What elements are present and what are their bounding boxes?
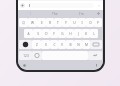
staticText: The [52,12,58,16]
staticText: R [49,21,51,25]
staticText: V [61,43,63,47]
button[interactable]: Q [19,18,28,27]
button[interactable]: D [42,29,50,38]
button[interactable]: 123 [19,51,32,60]
button[interactable]: Voice input [96,3,101,8]
button[interactable]: I [78,18,86,27]
button[interactable]: R [46,18,54,27]
staticText: I [30,12,32,16]
staticText: 123 [23,54,29,58]
button[interactable]: W [28,18,37,27]
staticText: M [85,43,88,47]
button[interactable] [27,3,94,8]
staticText: P [97,21,99,25]
button[interactable]: X [41,40,50,49]
staticText: A [27,32,30,36]
button[interactable]: O [86,18,94,27]
staticText: H [69,32,72,36]
button[interactable]: H [66,29,74,38]
staticText: J [78,32,79,36]
staticText: C [53,43,56,47]
staticText: D [45,32,48,36]
button[interactable]: The [41,10,68,17]
button[interactable]: Keyboard settings [95,10,101,17]
button[interactable]: Change language [22,63,27,68]
staticText: N [77,43,80,47]
button[interactable]: F [50,29,58,38]
button[interactable]: L [90,29,98,38]
button[interactable]: K [82,29,90,38]
button[interactable]: Dictation [94,63,99,68]
staticText: X [45,43,47,47]
staticText: Z [36,43,38,47]
button[interactable]: Return [88,51,102,60]
staticText: S [37,32,39,36]
button[interactable]: M [82,40,90,49]
button[interactable]: B [66,40,74,49]
button[interactable]: Backspace [90,40,102,49]
staticText: I [81,21,83,25]
button[interactable]: Z [32,40,41,49]
staticText: T [57,21,59,25]
button[interactable]: Add attachment [20,3,25,8]
staticText: G [61,32,64,36]
button[interactable]: Shift [19,40,32,49]
button[interactable]: E [37,18,46,27]
staticText: Q [22,21,25,25]
button[interactable]: J [74,29,82,38]
button[interactable]: G [58,29,66,38]
button[interactable]: I'm [68,10,95,17]
button[interactable]: Emoji [32,51,42,60]
staticText: O [89,21,92,25]
staticText: F [53,32,55,36]
button[interactable]: U [70,18,78,27]
staticText: U [73,21,76,25]
button[interactable]: C [50,40,58,49]
staticText: W [31,21,34,25]
staticText: Y [65,21,67,25]
button[interactable]: V [58,40,66,49]
button[interactable]: P [94,18,102,27]
button[interactable]: Y [62,18,70,27]
button[interactable]: A [24,29,33,38]
staticText: L [93,32,95,36]
button[interactable]: T [54,18,62,27]
staticText: K [85,32,87,36]
staticText: B [69,43,72,47]
button[interactable]: N [74,40,82,49]
staticText: I'm [79,12,84,16]
staticText: E [41,21,43,25]
button[interactable]: S [33,29,42,38]
